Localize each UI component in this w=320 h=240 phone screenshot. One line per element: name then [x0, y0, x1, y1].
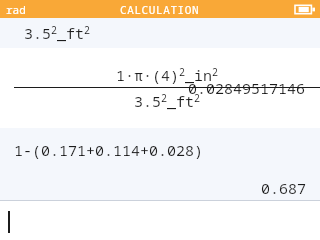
staticText: 1-(0.171+0.114+0.028) — [14, 140, 204, 160]
staticText: 3.52_ft2 — [24, 23, 91, 43]
button[interactable]: rad — [6, 2, 26, 17]
button[interactable]: 3.52_ft2 — [0, 18, 320, 48]
button[interactable]: 1-(0.171+0.114+0.028) — [0, 128, 320, 200]
staticText: 3.52_ft2 — [134, 91, 201, 111]
staticText: 1·π·(4)2_in2 — [116, 65, 219, 85]
other: Battery — [295, 4, 315, 15]
button[interactable] — [0, 201, 320, 240]
staticText: CALCULATION — [120, 2, 200, 17]
button[interactable]: 1·π·(4)2_in2 — [0, 48, 320, 128]
staticText: 0.02849517146 — [188, 78, 306, 98]
staticText: 0.687 — [0, 178, 306, 198]
